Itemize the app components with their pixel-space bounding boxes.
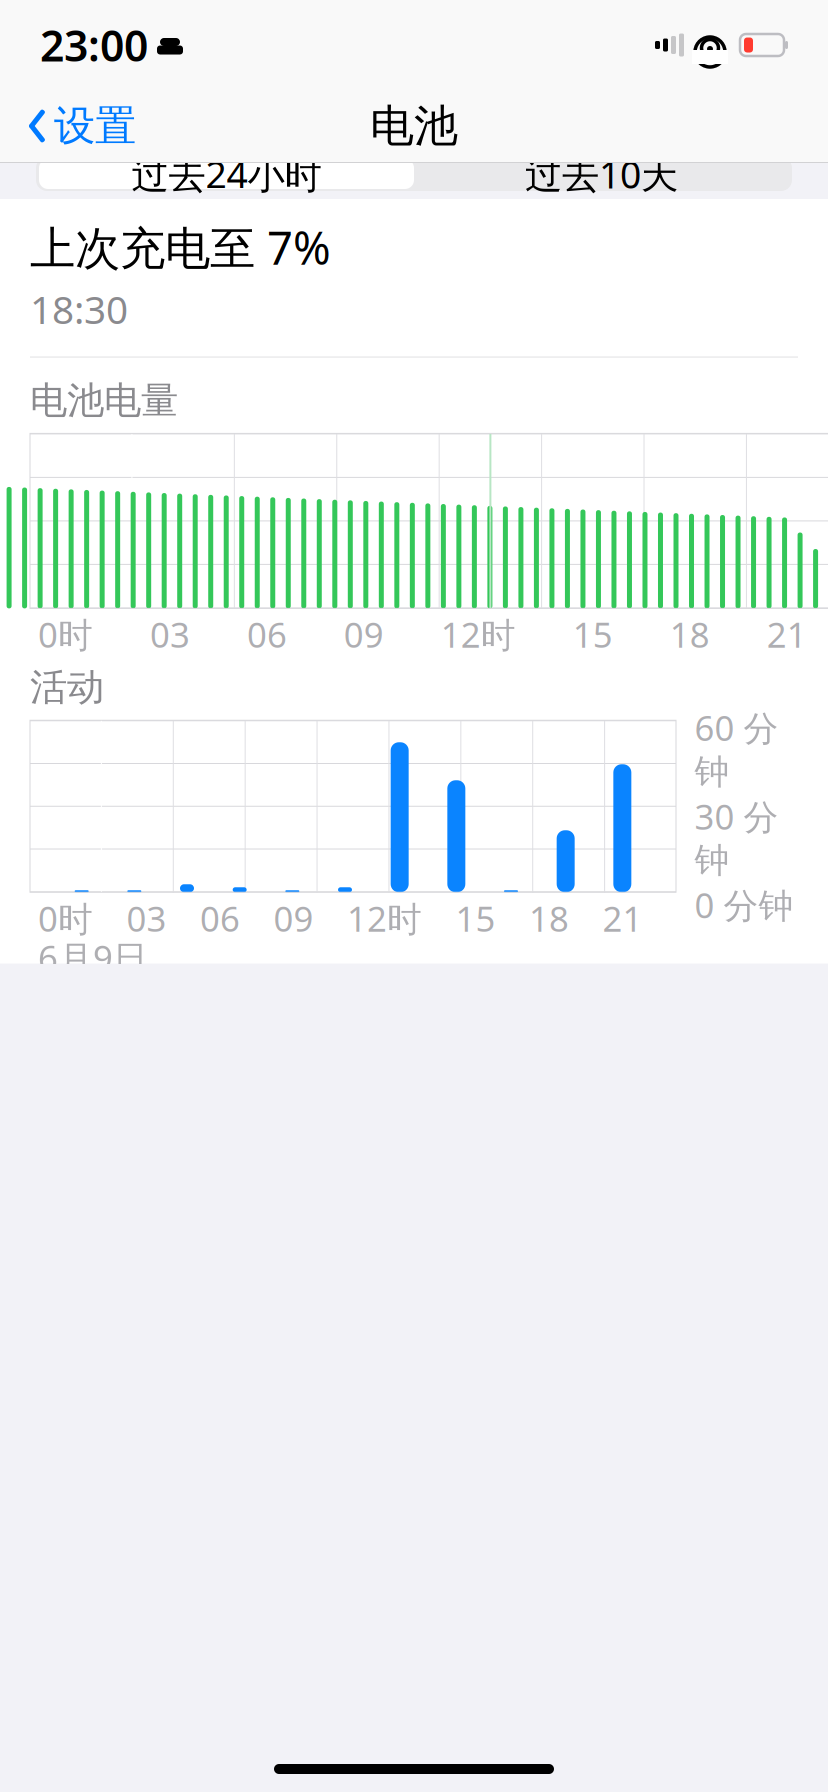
staticText: 6月9日 [38, 934, 148, 980]
button[interactable]: 过去10天 [414, 159, 789, 189]
staticText: 活动 [30, 664, 104, 710]
staticText: 0时 [38, 611, 93, 657]
staticText: 30 分钟 [694, 793, 778, 882]
staticText: 18 [529, 895, 569, 941]
staticText: 21 [602, 895, 642, 941]
staticText: 03 [150, 611, 190, 657]
staticText: 12时 [347, 895, 422, 941]
staticText: 18:30 [30, 283, 128, 334]
staticText: 15 [455, 895, 495, 941]
staticText: 12时 [441, 611, 516, 657]
staticText: 03 [126, 895, 166, 941]
staticText: 15 [573, 611, 613, 657]
staticText: 过去24小时 [131, 149, 321, 199]
button[interactable]: 过去24小时 [39, 159, 414, 189]
staticText: 09 [344, 611, 384, 657]
staticText: 设置 [54, 101, 136, 151]
staticText: 09 [273, 895, 313, 941]
staticText: 过去10天 [525, 149, 678, 199]
staticText: 上次充电至 7% [30, 217, 331, 277]
staticText: 0 分钟 [694, 882, 793, 928]
staticText: 电池电量 [30, 377, 178, 423]
button[interactable]: 设置 [22, 93, 142, 159]
staticText: 电池 [370, 99, 458, 153]
staticText: 18 [670, 611, 710, 657]
staticText: 21 [767, 611, 807, 657]
staticText: 06 [247, 611, 287, 657]
staticText: 06 [200, 895, 240, 941]
staticText: 60 分钟 [694, 705, 778, 793]
staticText: 23:00 [40, 17, 148, 73]
staticText: 0时 [38, 895, 93, 941]
